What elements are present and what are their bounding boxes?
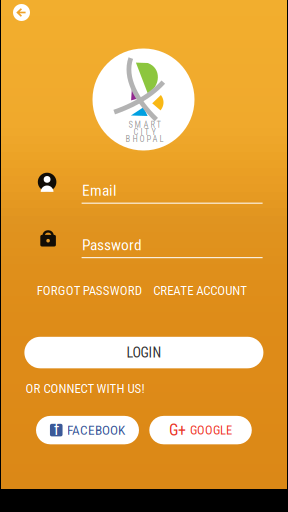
staticText: f — [54, 420, 60, 439]
staticText: FORGOT PASSWORD — [37, 283, 142, 298]
staticText: G+ — [169, 421, 186, 439]
staticText: Email — [82, 181, 117, 200]
staticText: OR CONNECT WITH US! — [25, 381, 144, 396]
button[interactable]: G+ — [149, 416, 252, 444]
button[interactable]: CREATE ACCOUNT — [151, 282, 249, 298]
staticText: FACEBOOK — [67, 422, 125, 438]
staticText: LOGIN — [126, 344, 161, 361]
staticText: GOOGLE — [190, 423, 232, 437]
button[interactable]: f — [36, 416, 139, 444]
staticText: SMART — [128, 120, 160, 130]
staticText: CREATE ACCOUNT — [153, 283, 247, 298]
button[interactable]: LOGIN — [24, 337, 263, 368]
button[interactable]: FORGOT PASSWORD — [36, 282, 142, 298]
staticText: Password — [82, 236, 142, 254]
staticText: BHOPAL — [125, 134, 163, 144]
staticText: CITY — [133, 127, 155, 137]
button[interactable]: Back — [7, 1, 36, 24]
